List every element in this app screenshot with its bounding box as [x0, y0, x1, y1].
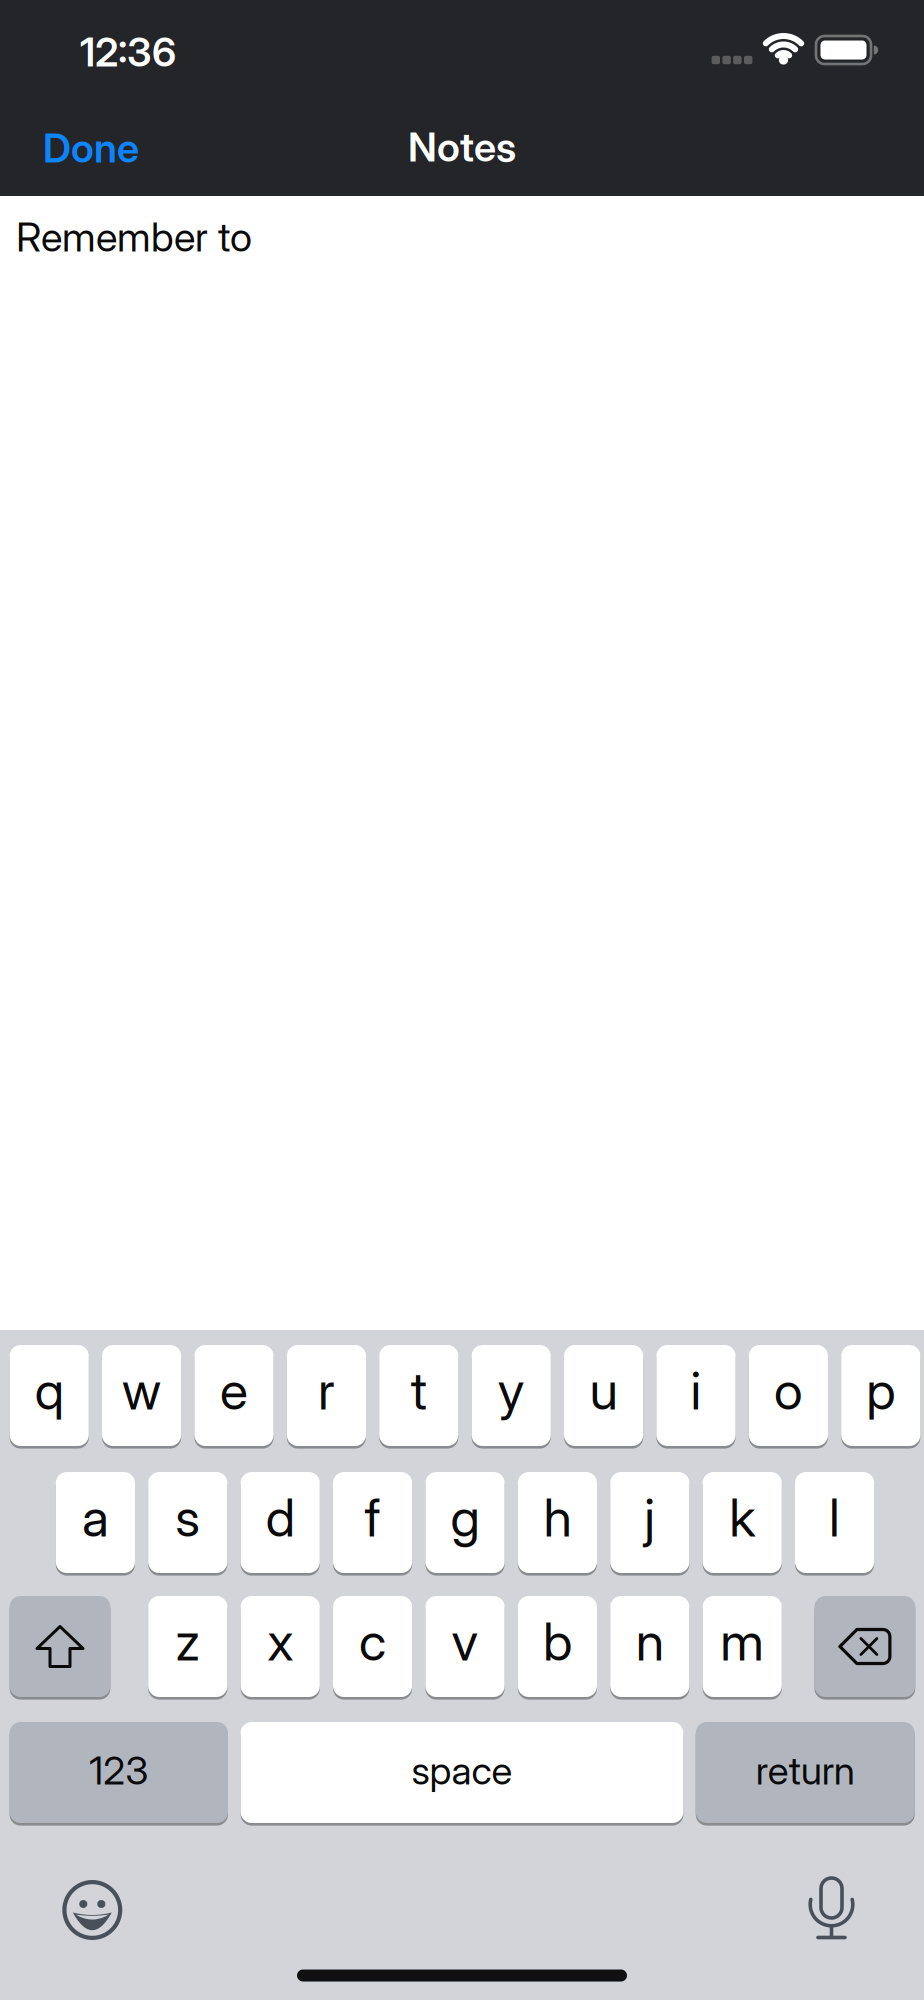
button[interactable]: 123: [10, 1722, 228, 1823]
button[interactable]: space: [241, 1722, 683, 1823]
button[interactable]: p: [841, 1345, 920, 1446]
button[interactable]: v: [425, 1596, 505, 1697]
button[interactable]: t: [379, 1345, 458, 1446]
button[interactable]: f: [333, 1472, 412, 1573]
button[interactable]: m: [703, 1596, 782, 1697]
button[interactable]: i: [656, 1345, 736, 1446]
button[interactable]: c: [333, 1596, 412, 1697]
button[interactable]: y: [472, 1345, 551, 1446]
button[interactable]: q: [10, 1345, 89, 1446]
button[interactable]: u: [564, 1345, 643, 1446]
staticText: z: [175, 1611, 200, 1672]
button[interactable]: e: [194, 1345, 274, 1446]
staticText: q: [35, 1360, 64, 1421]
button[interactable]: w: [102, 1345, 181, 1446]
button[interactable]: z: [148, 1596, 227, 1697]
button[interactable]: g: [425, 1472, 505, 1573]
staticText: o: [774, 1360, 803, 1421]
staticText: j: [644, 1487, 655, 1548]
staticText: p: [866, 1360, 895, 1421]
staticText: d: [266, 1487, 295, 1548]
button[interactable]: Dictate: [810, 1876, 852, 1939]
staticText: h: [543, 1487, 571, 1548]
staticText: Notes: [408, 123, 516, 170]
staticText: y: [498, 1360, 525, 1421]
staticText: g: [450, 1487, 479, 1548]
button[interactable]: d: [241, 1472, 320, 1573]
staticText: space: [411, 1748, 512, 1793]
staticText: i: [690, 1360, 701, 1421]
staticText: e: [220, 1360, 248, 1421]
button[interactable]: r: [287, 1345, 366, 1446]
staticText: n: [636, 1611, 664, 1672]
staticText: s: [175, 1487, 200, 1548]
staticText: u: [590, 1360, 618, 1421]
staticText: f: [365, 1487, 381, 1548]
button[interactable]: Shift: [10, 1596, 110, 1697]
staticText: t: [411, 1360, 427, 1421]
button[interactable]: s: [148, 1472, 227, 1573]
button[interactable]: o: [749, 1345, 828, 1446]
staticText: Done: [43, 124, 139, 171]
staticText: k: [729, 1487, 755, 1548]
staticText: 12:36: [80, 28, 176, 75]
staticText: r: [318, 1360, 335, 1421]
button[interactable]: Done: [43, 124, 139, 171]
button[interactable]: x: [241, 1596, 320, 1697]
button[interactable]: j: [610, 1472, 689, 1573]
staticText: v: [451, 1611, 478, 1672]
staticText: x: [267, 1611, 293, 1672]
staticText: 123: [89, 1748, 148, 1793]
button[interactable]: a: [56, 1472, 135, 1573]
staticText: m: [720, 1611, 764, 1672]
staticText: l: [829, 1487, 840, 1548]
button[interactable]: b: [518, 1596, 597, 1697]
staticText: return: [756, 1748, 855, 1793]
staticText: b: [543, 1611, 572, 1672]
staticText: a: [82, 1487, 109, 1548]
staticText: w: [122, 1360, 161, 1421]
button[interactable]: Emoji: [62, 1880, 122, 1940]
button[interactable]: h: [518, 1472, 597, 1573]
button[interactable]: n: [610, 1596, 689, 1697]
button[interactable]: Delete: [814, 1596, 915, 1697]
staticText: Remember to: [16, 213, 252, 260]
button[interactable]: k: [703, 1472, 782, 1573]
button[interactable]: return: [696, 1722, 915, 1823]
button[interactable]: l: [795, 1472, 874, 1573]
staticText: c: [359, 1611, 386, 1672]
